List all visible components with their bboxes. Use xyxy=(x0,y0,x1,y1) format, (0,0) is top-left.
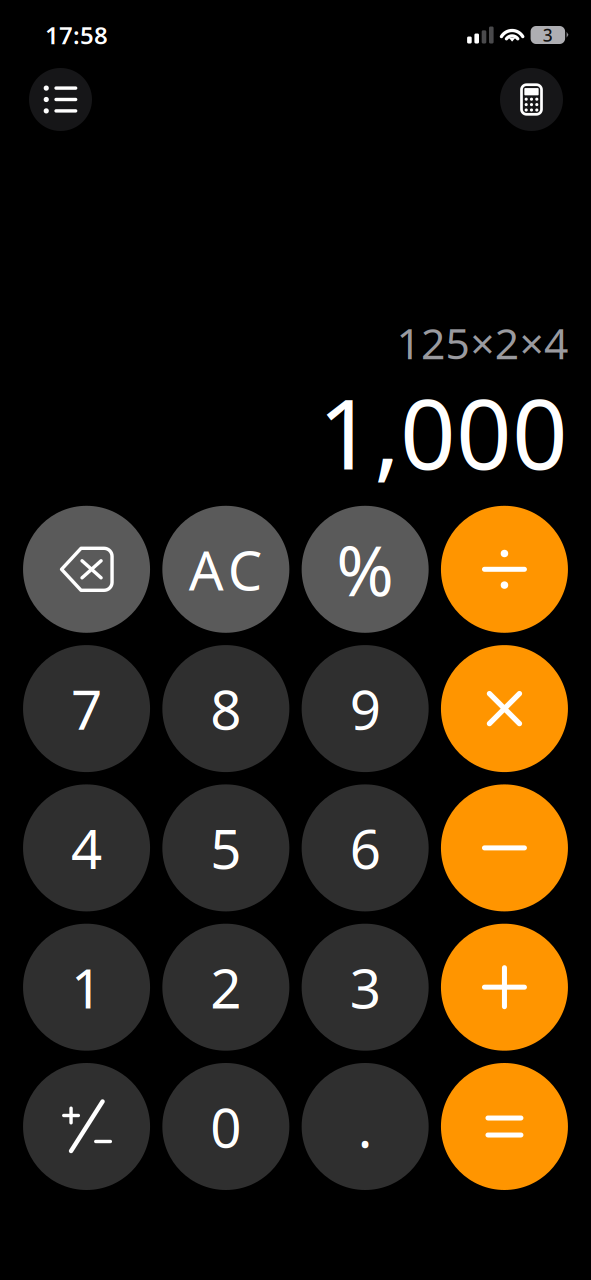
button[interactable]: 0 xyxy=(162,1063,289,1190)
button[interactable]: Divide xyxy=(441,506,568,633)
staticText: AC xyxy=(189,533,263,606)
staticText: 4 xyxy=(71,812,102,884)
staticText: 1 xyxy=(71,951,102,1023)
button[interactable]: 2 xyxy=(162,924,289,1051)
staticText: 0 xyxy=(210,1090,241,1163)
staticText: 3 xyxy=(350,951,381,1023)
button[interactable]: Multiply xyxy=(441,645,568,772)
button[interactable]: 8 xyxy=(162,645,289,772)
button[interactable]: 1 xyxy=(23,924,150,1051)
button[interactable]: Subtract xyxy=(441,784,568,911)
staticText: 7 xyxy=(71,672,102,745)
staticText: . xyxy=(358,1090,373,1163)
button[interactable]: Plus minus xyxy=(23,1063,150,1190)
staticText: 17:58 xyxy=(45,19,108,51)
staticText: 125×2×4 xyxy=(396,314,568,371)
button[interactable]: Equals xyxy=(441,1063,568,1190)
staticText: 6 xyxy=(350,812,381,884)
button[interactable]: 9 xyxy=(302,645,429,772)
staticText: 2 xyxy=(210,951,241,1023)
button[interactable]: 3 xyxy=(302,924,429,1051)
button[interactable]: 6 xyxy=(302,784,429,911)
button[interactable]: Add xyxy=(441,924,568,1051)
staticText: 5 xyxy=(210,812,241,884)
staticText: 3 xyxy=(543,23,553,46)
button[interactable]: . xyxy=(302,1063,429,1190)
button[interactable]: Delete xyxy=(23,506,150,633)
button[interactable]: 4 xyxy=(23,784,150,911)
staticText: 8 xyxy=(210,672,241,745)
button[interactable]: AC xyxy=(162,506,289,633)
button[interactable]: History xyxy=(29,68,92,131)
button[interactable]: Calculator xyxy=(500,68,563,131)
button[interactable]: 7 xyxy=(23,645,150,772)
button[interactable]: % xyxy=(302,506,429,633)
staticText: 9 xyxy=(350,672,381,745)
staticText: % xyxy=(336,523,394,615)
staticText: 1,000 xyxy=(318,367,568,496)
button[interactable]: 5 xyxy=(162,784,289,911)
